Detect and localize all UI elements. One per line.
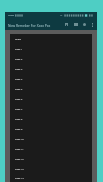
button[interactable]: Account — [80, 20, 89, 29]
staticText: Page 2 — [15, 58, 23, 61]
button[interactable]: Page 3 — [10, 64, 92, 74]
button[interactable]: Bookmark — [62, 20, 71, 29]
button[interactable]: Page 1 — [10, 44, 92, 54]
staticText: Page 4 — [15, 78, 23, 81]
button[interactable]: List view — [71, 20, 80, 29]
button[interactable]: More options — [89, 20, 96, 29]
button[interactable]: Page 7 — [10, 104, 92, 114]
staticText: 10:24 — [8, 14, 14, 17]
staticText: Page 3 — [15, 68, 23, 71]
button[interactable]: Page 4 — [10, 74, 92, 84]
button[interactable]: Page 8 — [10, 114, 92, 124]
staticText: Page 7 — [15, 108, 23, 111]
staticText: Now Remeber For Xxxx Pxx — [8, 23, 51, 27]
staticText: Page 12 — [15, 158, 24, 161]
button[interactable]: Page 13 — [10, 164, 92, 174]
staticText: Page 10 — [15, 138, 24, 141]
button[interactable]: Page 14 — [10, 174, 92, 182]
staticText: Index — [15, 38, 22, 41]
button[interactable]: Page 5 — [10, 84, 92, 94]
staticText: Page 5 — [15, 88, 23, 91]
button[interactable]: Page 12 — [10, 154, 92, 164]
staticText: Page 1 — [15, 48, 23, 51]
button[interactable]: Page 2 — [10, 54, 92, 64]
staticText: Page 13 — [15, 168, 24, 171]
button[interactable]: Page 6 — [10, 94, 92, 104]
button[interactable]: Page 10 — [10, 134, 92, 144]
staticText: Page 14 — [15, 177, 24, 180]
staticText: Page 6 — [15, 98, 23, 101]
button[interactable]: Index — [10, 34, 92, 44]
button[interactable]: Page 11 — [10, 144, 92, 154]
staticText: Page 8 — [15, 118, 23, 121]
staticText: Page 11 — [15, 148, 24, 151]
staticText: Page 9 — [15, 128, 23, 131]
button[interactable]: Page 9 — [10, 124, 92, 134]
